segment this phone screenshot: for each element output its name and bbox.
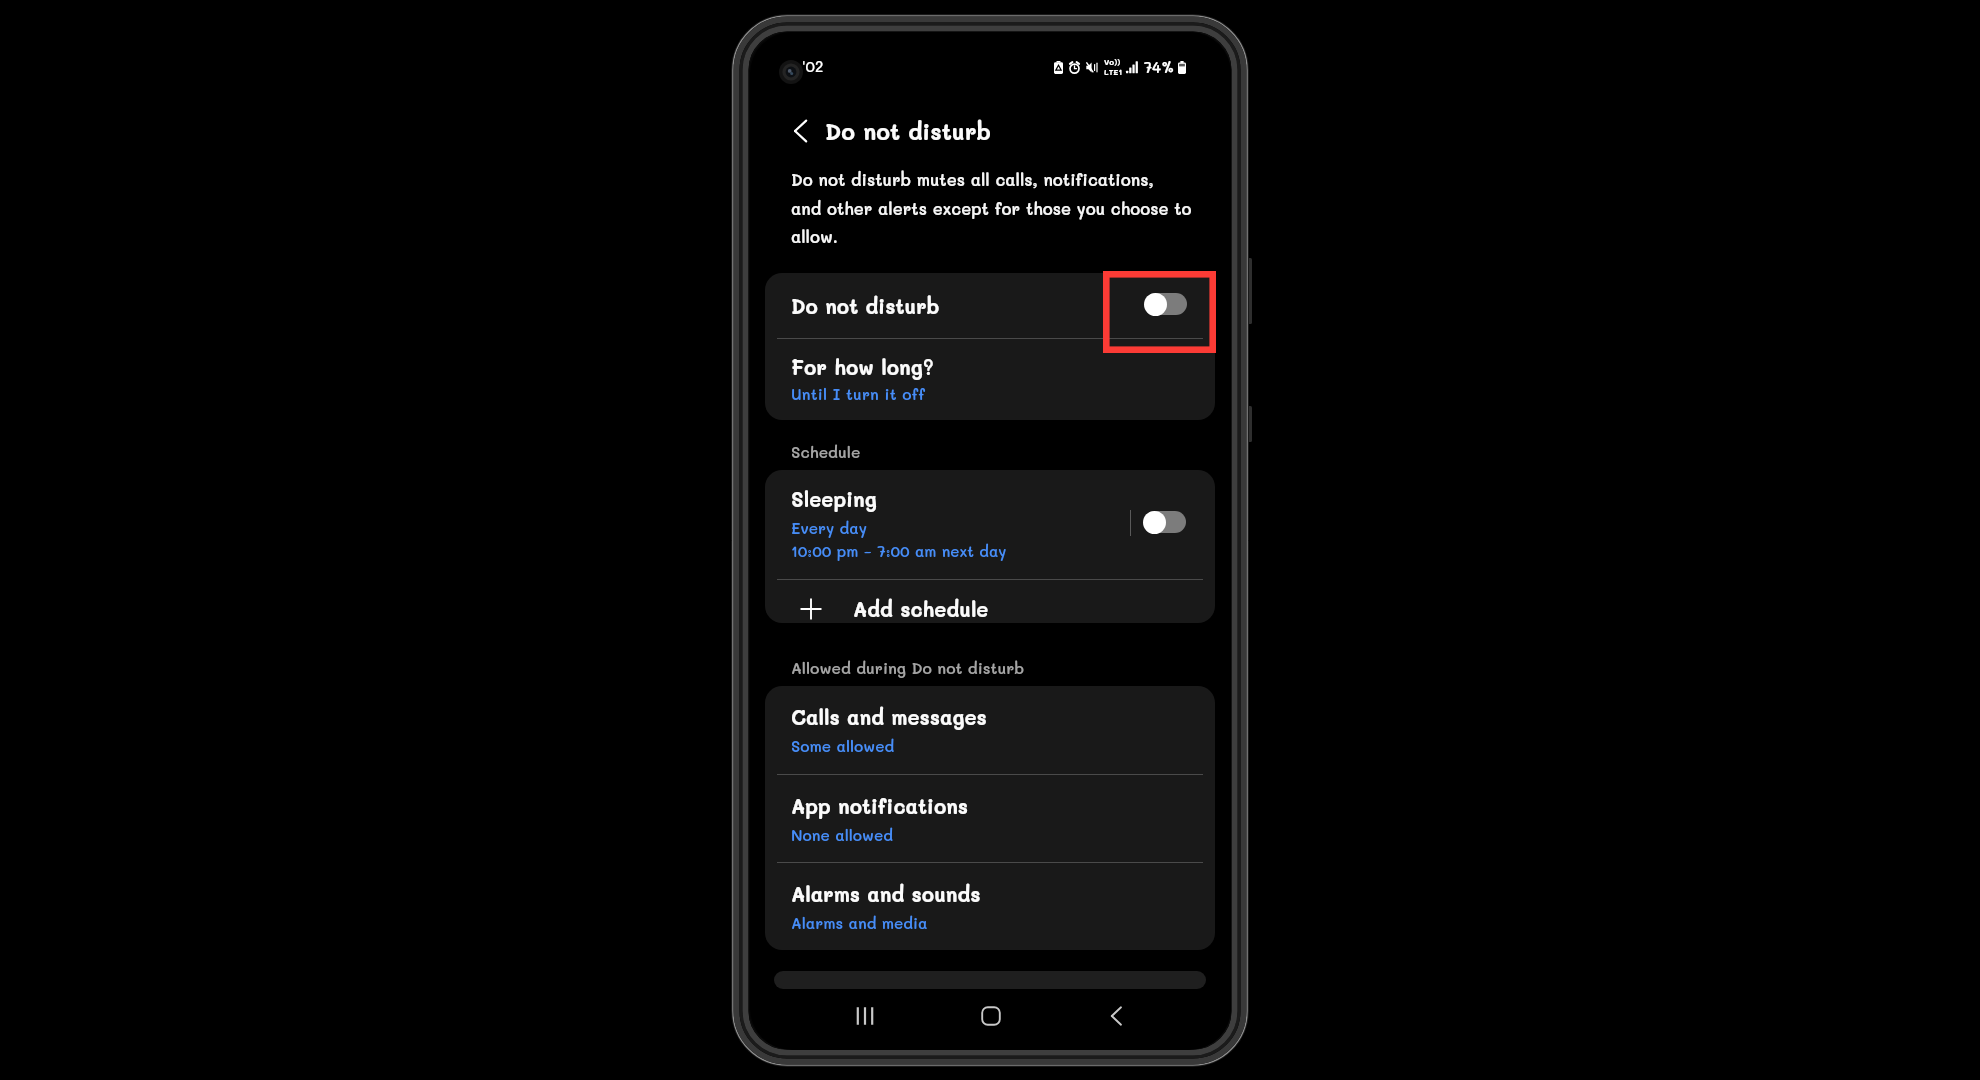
staticText: Do not disturb [825, 116, 992, 146]
staticText: '02 [802, 56, 824, 75]
staticText: Some allowed [791, 736, 895, 756]
button[interactable]: Off [1134, 504, 1196, 540]
button[interactable]: App notifications [765, 775, 1215, 862]
staticText: Do not disturb mutes all calls, notifica… [791, 169, 1192, 247]
button[interactable]: Recent apps [839, 990, 891, 1042]
staticText: Alarms and media [791, 913, 928, 933]
staticText: None allowed [791, 825, 894, 845]
staticText: Calls and messages [791, 704, 987, 730]
staticText: App notifications [791, 793, 969, 819]
staticText: Sleeping [791, 486, 877, 512]
staticText: Schedule [791, 442, 861, 462]
staticText: Until I turn it off [791, 384, 925, 404]
staticText: Add schedule [853, 596, 989, 622]
button[interactable]: Back [1091, 990, 1143, 1042]
button[interactable]: Home [965, 990, 1017, 1042]
button[interactable]: Do not disturb [765, 273, 1215, 338]
staticText: Every day [791, 518, 868, 538]
staticText: Vo)) [1104, 57, 1121, 67]
button[interactable]: Calls and messages [765, 686, 1215, 773]
button[interactable]: Sleeping [765, 470, 1215, 579]
button[interactable]: Add schedule [765, 580, 1215, 623]
staticText: 10:00 pm ~ 7:00 am next day [791, 541, 1007, 561]
staticText: For how long? [791, 354, 934, 380]
button[interactable]: For how long? [765, 339, 1215, 420]
staticText: Do not disturb [791, 293, 940, 319]
button[interactable]: Navigate up [784, 114, 818, 148]
button[interactable]: Alarms and sounds [765, 863, 1215, 950]
button[interactable]: Off [1135, 286, 1197, 322]
staticText: Allowed during Do not disturb [791, 658, 1025, 678]
staticText: LTE1 [1104, 67, 1123, 77]
staticText: 74% [1144, 58, 1175, 77]
staticText: Alarms and sounds [791, 881, 981, 907]
